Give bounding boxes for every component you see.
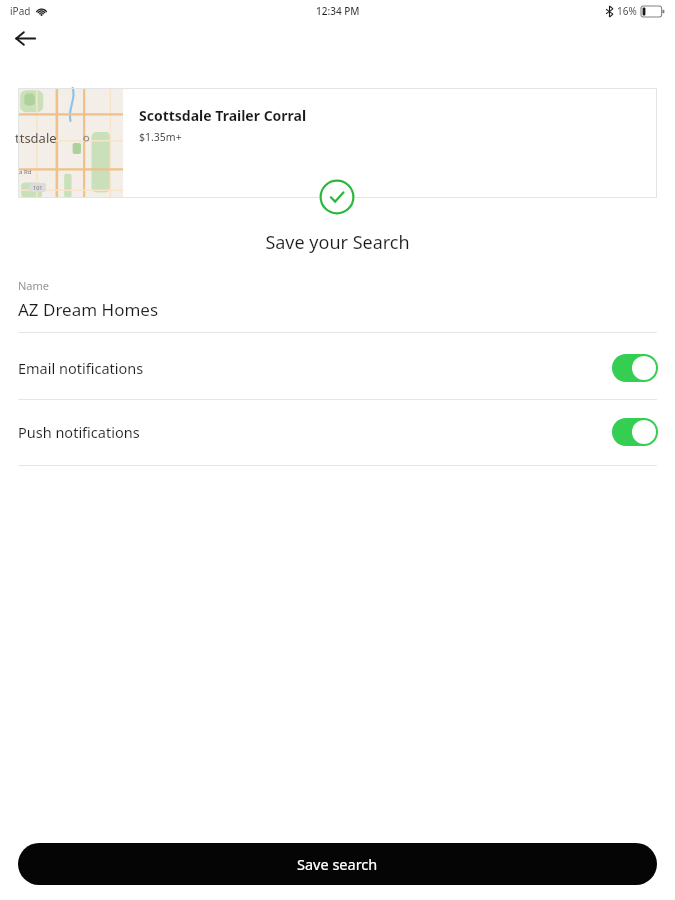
staticText: ttsdale bbox=[15, 129, 57, 147]
staticText: $1.35m+ bbox=[139, 130, 182, 144]
staticText: Name bbox=[18, 278, 50, 293]
button[interactable]: Save search bbox=[18, 843, 657, 885]
staticText: Push notifications bbox=[18, 422, 140, 442]
staticText: 12:34 PM bbox=[316, 4, 360, 18]
staticText: Scottsdale Trailer Corral bbox=[139, 106, 307, 125]
button[interactable]: Back bbox=[6, 19, 44, 57]
staticText: 16% bbox=[617, 4, 637, 18]
staticText: 101 bbox=[33, 184, 43, 191]
staticText: Save search bbox=[297, 854, 378, 874]
button[interactable]: Push notifications toggle, on bbox=[0, 400, 675, 464]
staticText: Save your Search bbox=[0, 230, 675, 255]
button[interactable]: ttsdale bbox=[18, 88, 657, 198]
staticText: Email notifications bbox=[18, 358, 144, 378]
button[interactable]: Email notifications toggle, on bbox=[0, 336, 675, 400]
staticText: AZ Dream Homes bbox=[18, 298, 159, 321]
staticText: a Rd bbox=[19, 168, 32, 176]
staticText: iPad bbox=[10, 4, 31, 18]
